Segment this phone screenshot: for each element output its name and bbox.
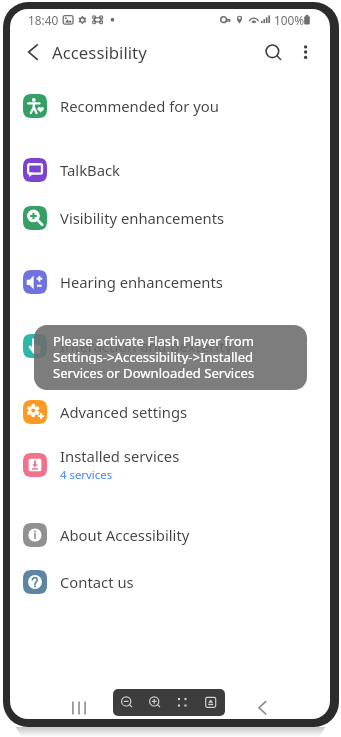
staticText: Recommended for you [60, 96, 219, 116]
staticText: Accessibility [52, 41, 147, 64]
button[interactable]: Installed services [10, 441, 330, 489]
staticText: Hearing enhancements [60, 272, 223, 292]
button[interactable]: Advanced settings [10, 388, 330, 436]
staticText: Services or Downloaded Services [53, 364, 255, 380]
button[interactable]: Recent apps [64, 694, 92, 719]
button[interactable]: Contact us [10, 558, 330, 606]
button[interactable]: More options [291, 37, 321, 67]
button[interactable]: Visibility enhancements [10, 194, 330, 242]
button[interactable]: Navigate up [18, 37, 48, 67]
button[interactable]: About Accessibility [10, 511, 330, 559]
button[interactable]: TalkBack [10, 146, 330, 194]
staticText: Contact us [60, 572, 134, 592]
staticText: 4 services [60, 467, 113, 483]
staticText: Advanced settings [60, 402, 188, 422]
button[interactable]: Interaction and dexterity [10, 322, 330, 370]
button[interactable]: Hearing enhancements [10, 258, 330, 306]
button[interactable]: Screenshot tools [113, 689, 225, 716]
button[interactable]: Recommended for you [10, 82, 330, 130]
staticText: TalkBack [60, 160, 120, 180]
button[interactable]: Back [248, 694, 276, 719]
staticText: 100% [274, 12, 305, 28]
staticText: Interaction and dexterity [60, 336, 233, 356]
staticText: 18:40 [28, 12, 59, 28]
button[interactable]: Search [258, 38, 288, 68]
staticText: Settings->Accessibility->Installed [53, 348, 254, 364]
staticText: Visibility enhancements [60, 208, 225, 228]
staticText: Please activate Flash Player from [53, 332, 254, 348]
staticText: Installed services [60, 446, 180, 466]
staticText: About Accessibility [60, 525, 190, 545]
